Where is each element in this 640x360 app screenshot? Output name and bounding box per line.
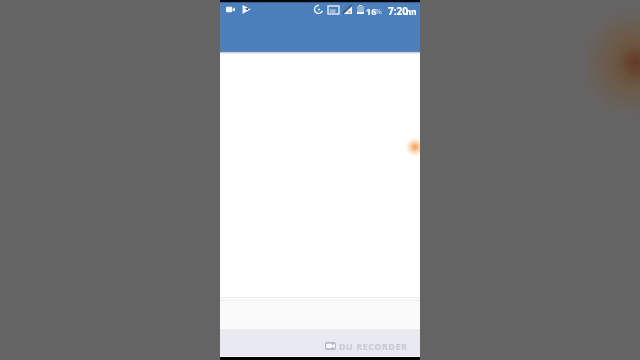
staticText: 16 bbox=[366, 5, 377, 17]
staticText: % bbox=[375, 6, 382, 16]
staticText: nn bbox=[406, 6, 417, 17]
staticText: DU RECORDER bbox=[339, 340, 408, 352]
button[interactable]: Add bbox=[404, 136, 420, 158]
staticText: 7:20 bbox=[388, 4, 408, 17]
